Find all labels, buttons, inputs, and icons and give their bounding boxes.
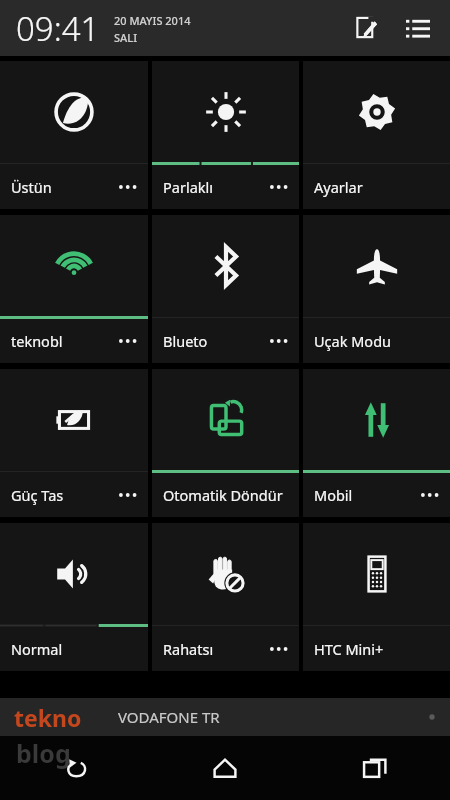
button[interactable]: Parlaklık: [152, 61, 299, 209]
staticText: Uçak Modu: [314, 331, 392, 351]
staticText: Üstün Güç Tas: [11, 177, 65, 197]
button[interactable]: Edit: [344, 6, 388, 50]
button[interactable]: Back: [0, 736, 150, 800]
staticText: Otomatik Döndür: [163, 485, 283, 505]
button[interactable]: Recents: [300, 736, 450, 800]
button[interactable]: Ayarlar: [303, 61, 450, 209]
button[interactable]: Home: [150, 736, 300, 800]
staticText: blog: [16, 736, 71, 770]
staticText: Bluetooth: [163, 331, 216, 351]
button[interactable]: Üstün Güç Tas: [0, 61, 148, 209]
button[interactable]: List: [396, 6, 440, 50]
button[interactable]: Otomatik Döndür: [152, 369, 299, 517]
button[interactable]: HTC Mini+: [303, 523, 450, 671]
button[interactable]: Bluetooth: [152, 215, 299, 363]
staticText: teknoblog: [11, 331, 65, 351]
button[interactable]: Rahatsız Etme: [152, 523, 299, 671]
button[interactable]: Mobil Veriler: [303, 369, 450, 517]
staticText: HTC Mini+: [314, 639, 384, 659]
button[interactable]: Normal: [0, 523, 148, 671]
button[interactable]: Uçak Modu: [303, 215, 450, 363]
staticText: 09:41: [16, 6, 100, 51]
staticText: VODAFONE TR: [118, 707, 220, 727]
button[interactable]: Güç Tasarrufu: [0, 369, 148, 517]
staticText: SALI: [114, 30, 138, 45]
staticText: tekno: [14, 702, 82, 733]
staticText: Rahatsız Etme: [163, 639, 216, 659]
staticText: Parlaklık: [163, 177, 216, 197]
staticText: Normal: [11, 639, 63, 659]
button[interactable]: teknoblog: [0, 215, 148, 363]
staticText: 20 MAYIS 2014: [114, 13, 191, 28]
staticText: Ayarlar: [314, 177, 363, 197]
staticText: Mobil Veriler: [314, 485, 367, 505]
staticText: Güç Tasarrufu: [11, 485, 65, 505]
